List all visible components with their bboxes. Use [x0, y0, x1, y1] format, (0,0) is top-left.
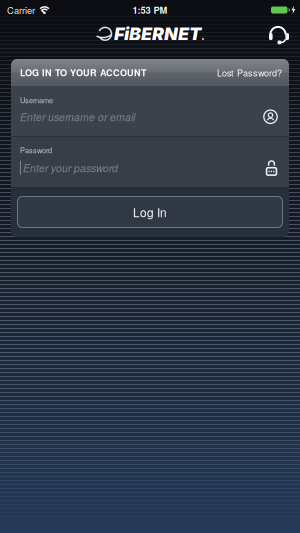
- staticText: Username: [20, 95, 53, 105]
- staticText: Carrier: [7, 3, 35, 17]
- staticText: Enter username or email: [20, 109, 135, 124]
- staticText: 1:53 PM: [132, 3, 167, 17]
- staticText: Enter your password: [23, 160, 118, 175]
- staticText: LOG IN TO YOUR ACCOUNT: [20, 66, 147, 79]
- staticText: Log In: [133, 203, 167, 220]
- staticText: FiBERNET: [114, 23, 201, 45]
- button[interactable]: Password: [11, 137, 289, 187]
- button[interactable]: Username: [11, 86, 289, 136]
- button[interactable]: Lost Password?: [217, 66, 282, 79]
- button[interactable]: Support: [268, 23, 300, 45]
- button[interactable]: Log In: [17, 196, 283, 228]
- staticText: Password: [20, 145, 52, 155]
- staticText: Lost Password?: [217, 66, 282, 79]
